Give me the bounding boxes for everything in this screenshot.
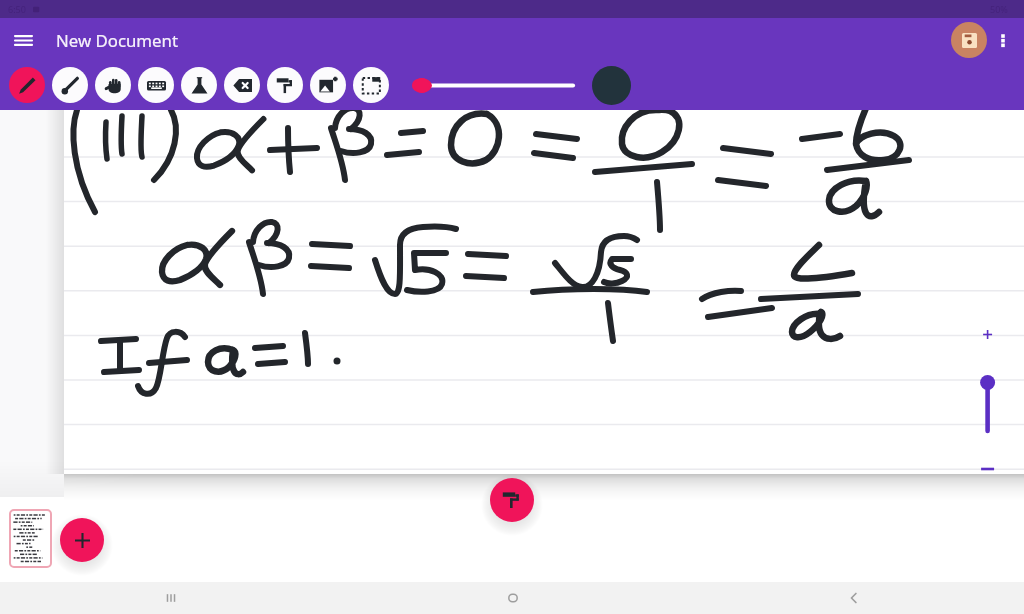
button[interactable]: Paint tool [490,478,534,522]
button[interactable]: Home [342,582,683,614]
button[interactable]: Save [951,22,987,58]
button[interactable]: Stroke size [405,70,585,101]
button[interactable]: Zoom [976,325,1000,477]
button[interactable]: Insert image [310,67,346,103]
button[interactable]: More options [987,24,1019,56]
button[interactable]: Brush [52,67,88,103]
button[interactable]: Shapes [181,67,217,103]
button[interactable]: Back [683,582,1024,614]
button[interactable]: Page 1 thumbnail [9,509,52,568]
staticText: 50% [990,3,1008,15]
button[interactable]: Eraser [224,67,260,103]
staticText: New Document [56,29,178,52]
button[interactable]: Pan [95,67,131,103]
button[interactable]: Add page [60,518,104,562]
button[interactable]: Recent apps [0,582,342,614]
button[interactable]: Lasso select [353,67,389,103]
button[interactable]: Menu [8,25,38,55]
button[interactable]: Fill [267,67,303,103]
button[interactable]: Pen [9,67,45,103]
button[interactable]: Keyboard [138,67,174,103]
button[interactable]: Ink colour [592,66,631,105]
staticText: 6:50 [8,3,26,15]
